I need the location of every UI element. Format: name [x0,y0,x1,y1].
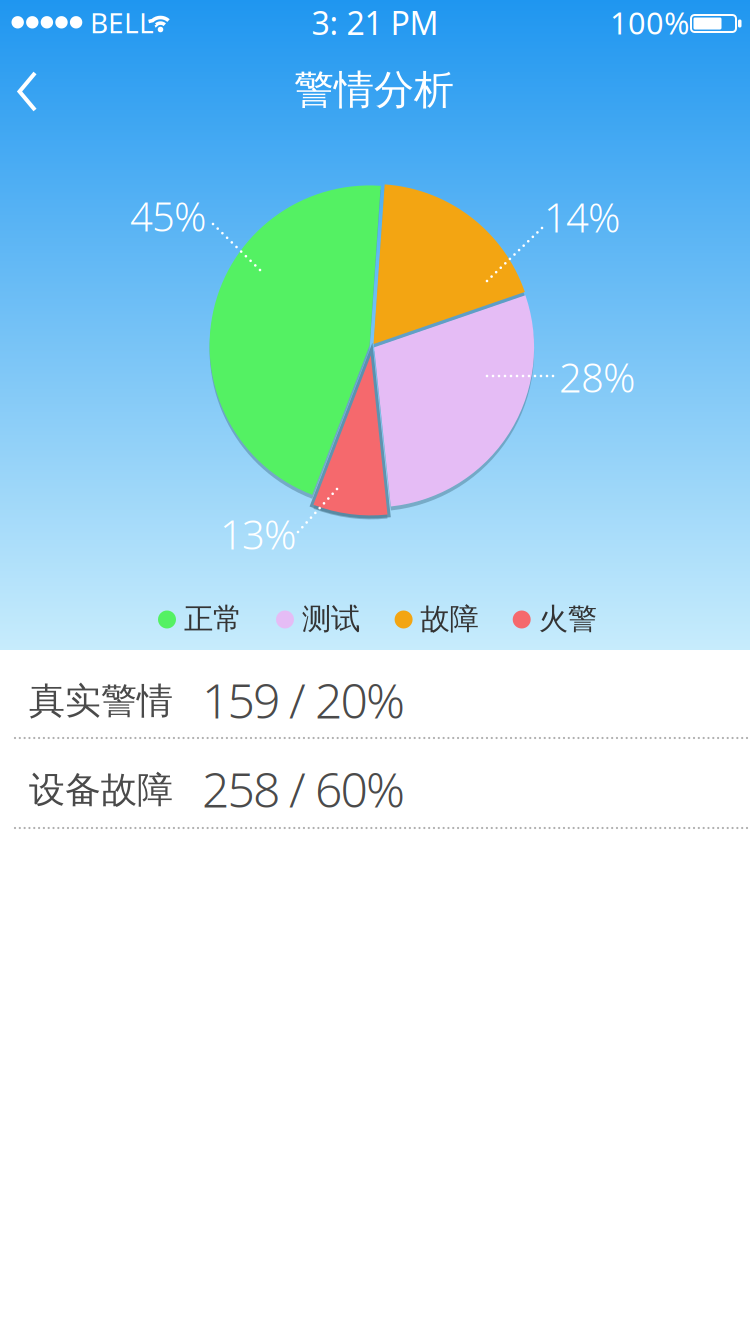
staticText: 13% [220,507,296,560]
staticText: 火警 [539,601,597,637]
staticText: 正常 [184,601,242,637]
staticText: 45% [130,189,206,242]
staticText: 真实警情 [29,679,173,723]
staticText: 设备故障 [29,768,173,812]
button[interactable]: Back [8,68,56,115]
staticText: 14% [544,190,620,243]
staticText: 测试 [302,601,360,637]
staticText: 警情分析 [294,65,454,114]
staticText: 3: 21 PM [311,1,438,44]
staticText: 100% [610,2,689,43]
staticText: 故障 [421,601,479,637]
staticText: 28% [559,350,635,403]
staticText: 258 / 60% [202,757,405,821]
staticText: 159 / 20% [202,668,405,732]
staticText: BELL [90,4,154,41]
